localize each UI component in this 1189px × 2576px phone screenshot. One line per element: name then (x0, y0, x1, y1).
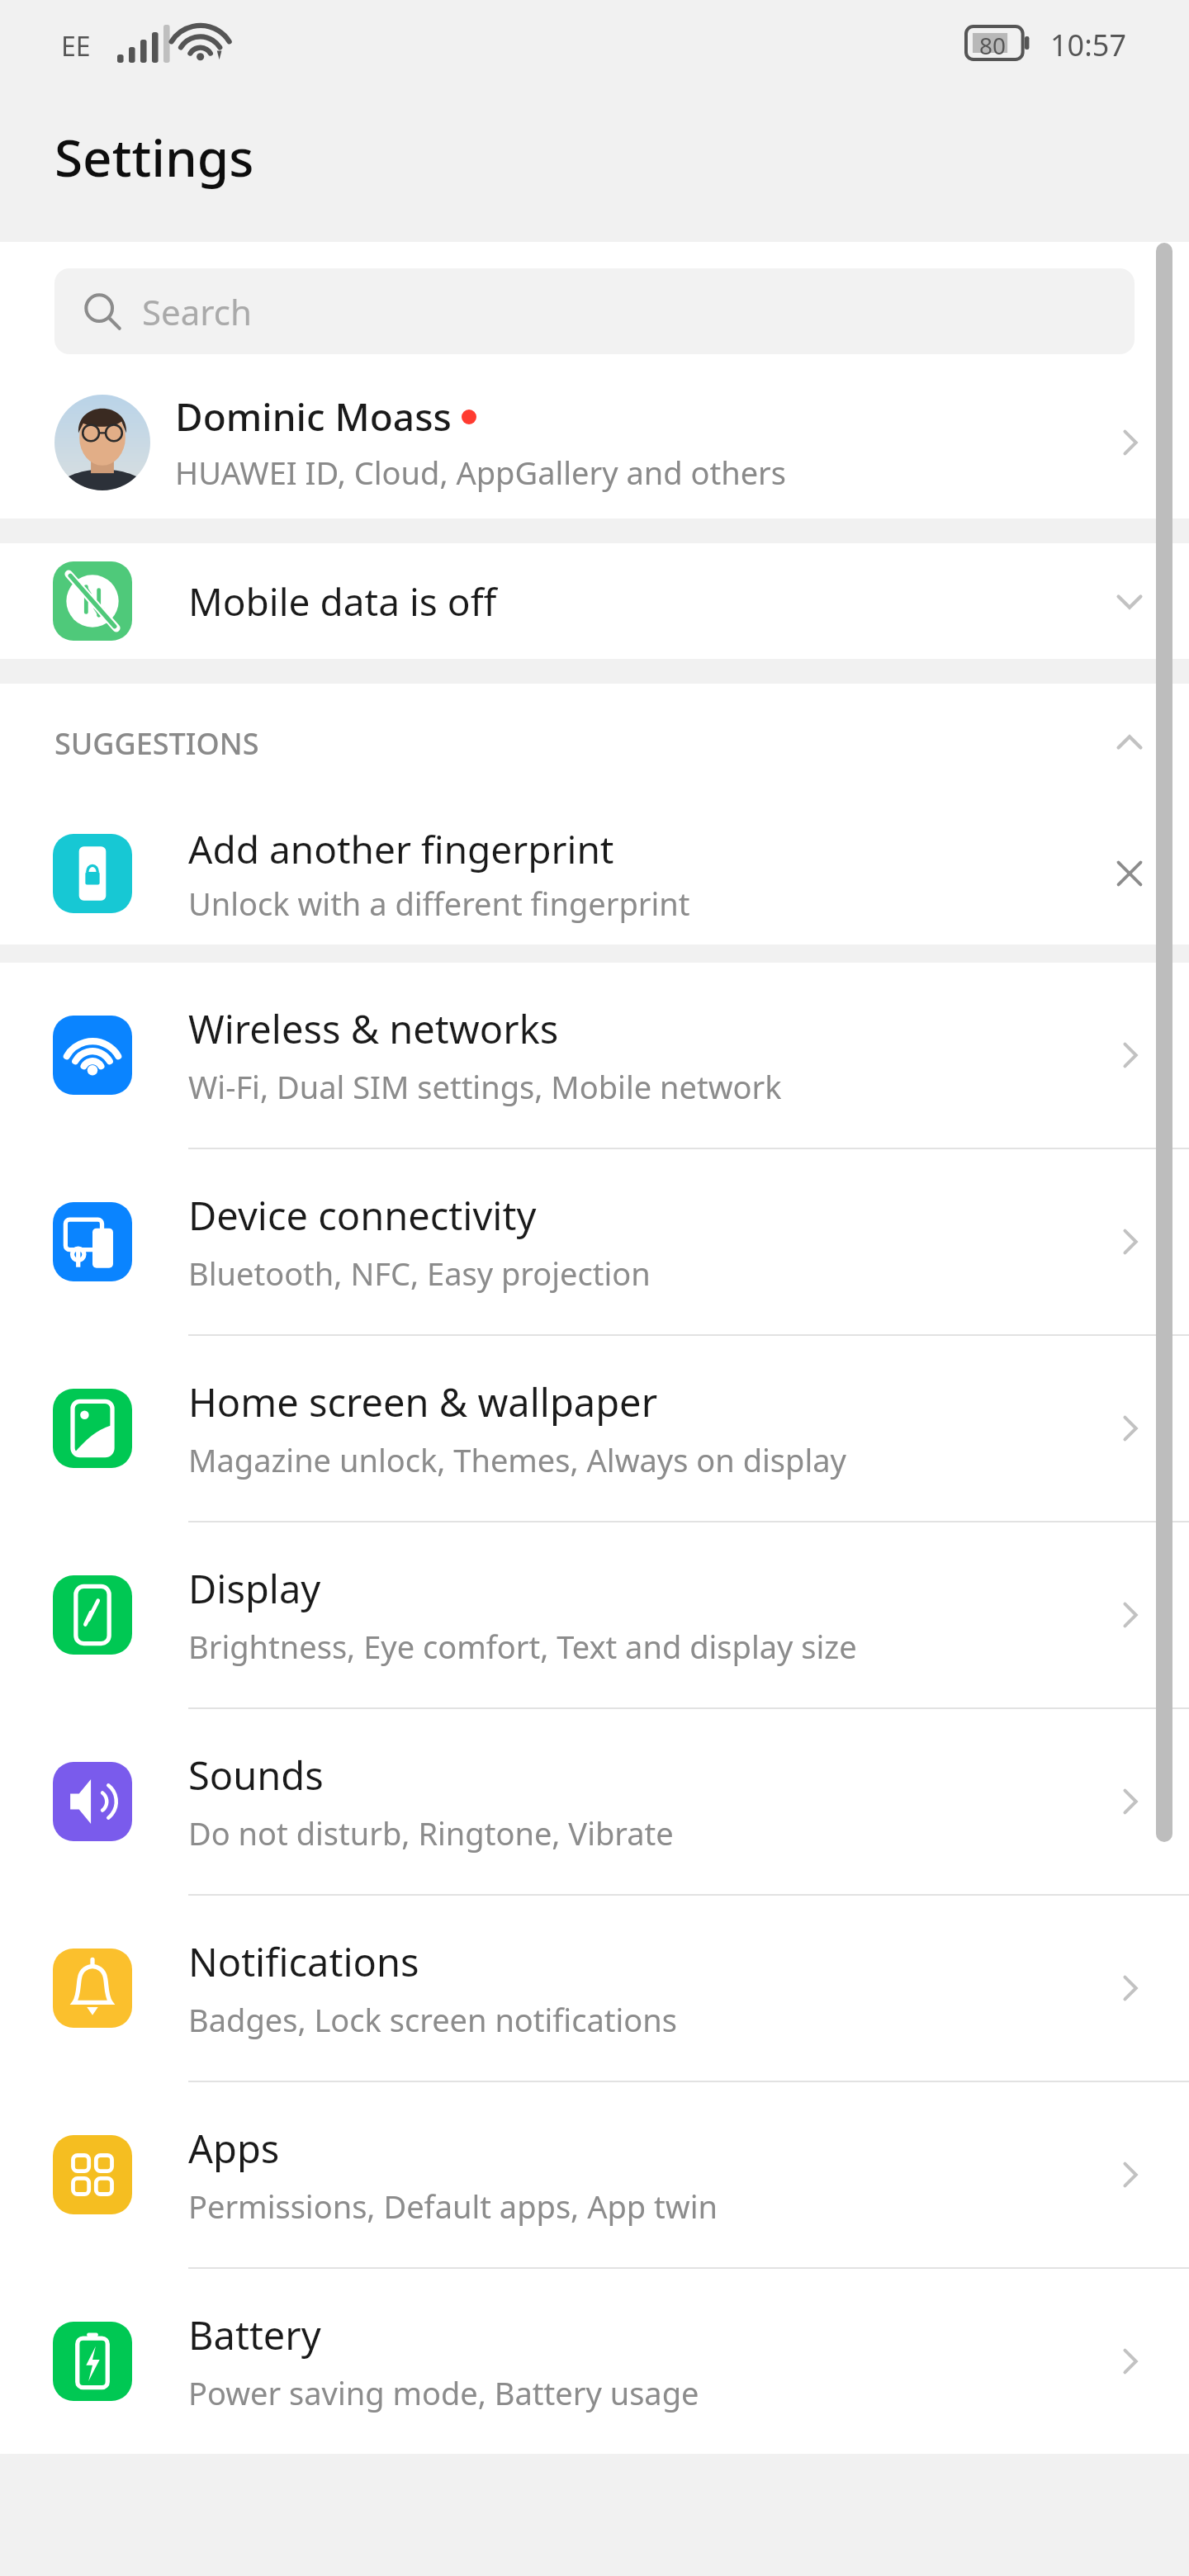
staticText: Do not disturb, Ringtone, Vibrate (188, 1811, 674, 1854)
staticText: Settings (54, 122, 254, 192)
button[interactable]: Home screen & wallpaper (0, 1336, 1189, 1521)
staticText: Magazine unlock, Themes, Always on displ… (188, 1438, 846, 1481)
staticText: Bluetooth, NFC, Easy projection (188, 1252, 651, 1295)
button[interactable]: Mobile data is off (0, 543, 1189, 659)
staticText: Power saving mode, Battery usage (188, 2371, 699, 2414)
staticText: Home screen & wallpaper (188, 1376, 658, 1428)
staticText: Device connectivity (188, 1189, 537, 1242)
button[interactable]: Search (54, 268, 1135, 354)
button[interactable]: Sounds (0, 1709, 1189, 1894)
staticText: Notifications (188, 1935, 419, 1988)
staticText: Display (188, 1562, 321, 1615)
other: Collapse (1106, 720, 1153, 766)
staticText: Mobile data is off (188, 575, 1106, 627)
staticText: SUGGESTIONS (54, 723, 1106, 764)
other: Dismiss suggestion (1106, 850, 1153, 897)
staticText: Unlock with a different fingerprint (188, 882, 690, 925)
button[interactable]: Notifications (0, 1896, 1189, 2081)
button[interactable]: Device connectivity (0, 1149, 1189, 1334)
staticText: Dominic Moass (175, 391, 452, 443)
staticText: Add another fingerprint (188, 823, 614, 875)
staticText: Wi-Fi, Dual SIM settings, Mobile network (188, 1065, 782, 1108)
button[interactable]: SUGGESTIONS (0, 684, 1189, 803)
staticText: Permissions, Default apps, App twin (188, 2185, 718, 2228)
button[interactable]: Display (0, 1522, 1189, 1707)
other: Expand (1106, 578, 1153, 624)
staticText: 80 (979, 30, 1007, 61)
staticText: EE (61, 28, 91, 64)
staticText: Search (142, 288, 252, 335)
button[interactable]: Dominic Moass (0, 366, 1189, 519)
staticText: 10:57 (1050, 25, 1127, 65)
staticText: Wireless & networks (188, 1002, 559, 1055)
staticText: Battery (188, 2308, 321, 2361)
button[interactable]: Add another fingerprint (0, 803, 1189, 945)
staticText: Badges, Lock screen notifications (188, 1998, 678, 2041)
staticText: Brightness, Eye comfort, Text and displa… (188, 1625, 857, 1668)
staticText: Apps (188, 2122, 280, 2175)
button[interactable]: Battery (0, 2269, 1189, 2454)
button[interactable]: Apps (0, 2082, 1189, 2267)
button[interactable]: Wireless & networks (0, 963, 1189, 1148)
staticText: HUAWEI ID, Cloud, AppGallery and others (175, 451, 787, 494)
staticText: Sounds (188, 1749, 324, 1802)
